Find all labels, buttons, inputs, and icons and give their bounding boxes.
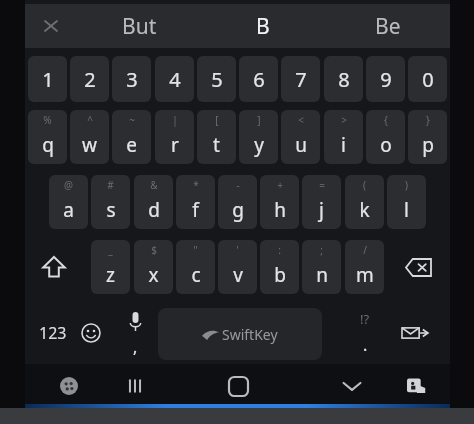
staticText: # (107, 178, 114, 192)
staticText: l (404, 197, 409, 223)
staticText: g (232, 197, 244, 223)
staticText: p (422, 132, 434, 158)
button[interactable]: Home (216, 364, 260, 408)
button[interactable]: 4 (155, 56, 194, 102)
button[interactable]: 3 (112, 56, 151, 102)
button[interactable]: 6 (239, 56, 278, 102)
button[interactable]: } (408, 110, 447, 164)
staticText: } (426, 113, 430, 127)
button[interactable]: Shift (28, 240, 80, 294)
button[interactable]: % (28, 110, 67, 164)
button[interactable]: = (302, 175, 341, 229)
button[interactable]: Recents (113, 364, 157, 408)
button[interactable]: Be (326, 4, 450, 48)
button[interactable]: 2 (70, 56, 109, 102)
staticText: 1 (42, 66, 54, 93)
staticText: [ (215, 113, 219, 127)
button[interactable]: Voice input (114, 306, 156, 360)
staticText: SwiftKey (222, 325, 278, 344)
button[interactable]: Switch keyboard (394, 364, 438, 408)
button[interactable]: Close suggestions (29, 4, 73, 48)
button[interactable]: 5 (197, 56, 236, 102)
staticText: u (295, 132, 307, 158)
staticText: { (384, 113, 388, 127)
staticText: j (319, 197, 324, 223)
button[interactable]: | (155, 110, 194, 164)
staticText: 6 (253, 66, 265, 93)
staticText: n (316, 262, 328, 288)
button[interactable]: < (281, 110, 320, 164)
staticText: * (193, 178, 199, 192)
staticText: !? (360, 310, 370, 328)
button[interactable]: @ (49, 175, 88, 229)
button[interactable]: 8 (324, 56, 363, 102)
staticText: q (42, 132, 54, 158)
staticText: e (126, 132, 137, 158)
staticText: i (341, 132, 346, 158)
staticText: ' (236, 243, 239, 257)
staticText: / (363, 243, 367, 257)
staticText: ^ (87, 113, 93, 127)
staticText: y (254, 132, 264, 158)
staticText: ; (320, 243, 323, 257)
button[interactable]: ^ (70, 110, 109, 164)
staticText: > (341, 113, 347, 127)
button[interactable]: 1 (28, 56, 67, 102)
staticText: d (148, 197, 160, 223)
staticText: _ (108, 243, 113, 257)
button[interactable]: $ (134, 240, 173, 294)
staticText: a (63, 197, 74, 223)
button[interactable]: _ (91, 240, 130, 294)
button[interactable]: ; (302, 240, 341, 294)
staticText: x (148, 262, 159, 288)
staticText: 3 (126, 66, 138, 93)
button[interactable]: B (201, 4, 325, 48)
button[interactable]: # (91, 175, 130, 229)
button[interactable]: * (176, 175, 215, 229)
button[interactable]: Send (392, 306, 438, 360)
button[interactable]: " (176, 240, 215, 294)
button[interactable]: 0 (408, 56, 447, 102)
button[interactable]: !? (344, 306, 386, 360)
staticText: 5 (211, 66, 223, 93)
button[interactable]: Emoji (70, 306, 112, 360)
button[interactable]: Game tools (47, 364, 91, 408)
button[interactable]: ' (218, 240, 257, 294)
button[interactable]: 7 (281, 56, 320, 102)
button[interactable]: Hide keyboard (330, 364, 374, 408)
staticText: c (191, 262, 201, 288)
staticText: h (274, 197, 286, 223)
button[interactable]: 123 (28, 306, 78, 360)
button[interactable]: - (218, 175, 257, 229)
staticText: 4 (169, 66, 181, 93)
staticText: 0 (422, 66, 434, 93)
button[interactable]: But (77, 4, 201, 48)
staticText: 9 (380, 66, 392, 93)
staticText: k (359, 197, 370, 223)
button[interactable]: { (366, 110, 405, 164)
button[interactable]: ] (239, 110, 278, 164)
button[interactable]: ) (387, 175, 426, 229)
staticText: 8 (338, 66, 350, 93)
button[interactable]: ( (345, 175, 384, 229)
staticText: . (363, 334, 368, 356)
staticText: | (172, 113, 178, 127)
staticText: s (106, 197, 116, 223)
staticText: % (43, 113, 52, 127)
button[interactable]: : (260, 240, 299, 294)
staticText: f (192, 197, 199, 223)
button[interactable]: Backspace (392, 240, 444, 294)
staticText: : (278, 243, 281, 257)
button[interactable]: Space (158, 308, 322, 360)
button[interactable]: / (345, 240, 384, 294)
button[interactable]: & (134, 175, 173, 229)
staticText: z (106, 262, 115, 288)
button[interactable]: > (324, 110, 363, 164)
staticText: , (133, 336, 138, 358)
button[interactable]: + (260, 175, 299, 229)
staticText: But (122, 12, 157, 41)
button[interactable]: ~ (112, 110, 151, 164)
staticText: ] (257, 113, 261, 127)
button[interactable]: [ (197, 110, 236, 164)
button[interactable]: 9 (366, 56, 405, 102)
